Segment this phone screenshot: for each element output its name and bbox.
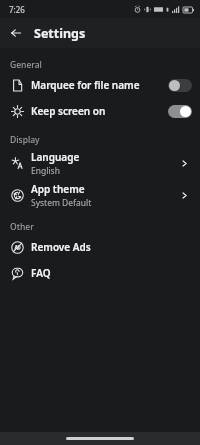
button[interactable]: Keep screen on [0,98,200,124]
staticText: Settings [34,25,86,42]
button[interactable]: Remove Ads [0,234,200,260]
button[interactable]: Back [4,21,28,45]
staticText: English [31,165,60,177]
button[interactable]: Off [168,79,192,92]
staticText: Marquee for file name [31,78,140,92]
staticText: Remove Ads [31,240,91,254]
staticText: App theme [31,182,85,196]
button[interactable]: Open [176,187,192,203]
staticText: FAQ [31,266,51,280]
staticText: Language [31,150,80,164]
button[interactable]: Open [176,155,192,171]
staticText: 7:26 [9,4,25,15]
button[interactable]: App theme [0,179,200,211]
button[interactable]: Marquee for file name [0,72,200,98]
staticText: General [10,59,42,71]
staticText: Other [10,221,34,233]
staticText: Display [10,134,40,146]
staticText: System Default [31,197,92,209]
button[interactable]: FAQ [0,260,200,286]
button[interactable]: On [168,105,192,118]
button[interactable]: Language [0,147,200,179]
staticText: Keep screen on [31,104,106,118]
